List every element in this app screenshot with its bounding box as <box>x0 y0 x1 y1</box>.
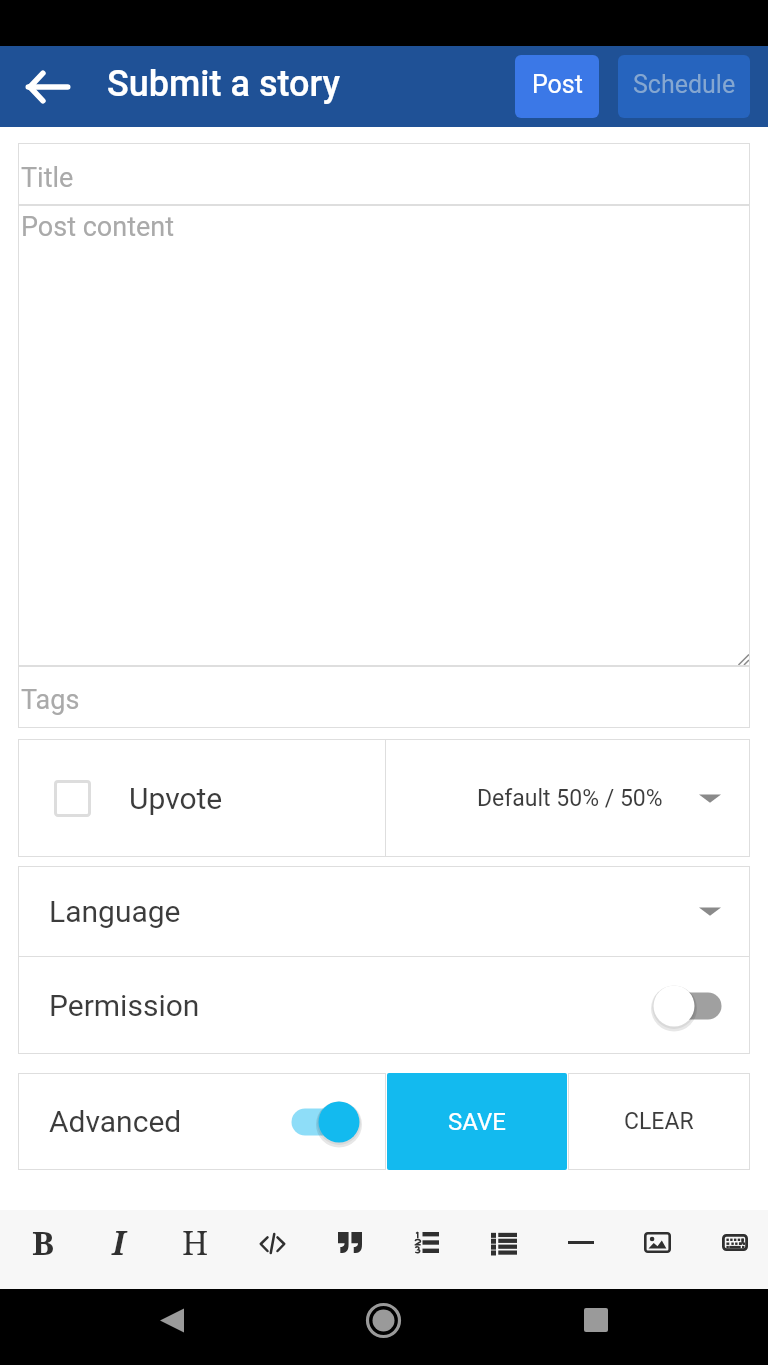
staticText: Upvote <box>129 781 223 816</box>
button[interactable]: Post <box>515 55 599 118</box>
staticText: B <box>32 1220 55 1265</box>
staticText: Schedule <box>633 70 736 99</box>
staticText: Language <box>49 894 181 929</box>
button[interactable]: Title <box>18 143 750 205</box>
staticText: H <box>182 1220 209 1265</box>
button[interactable]: Quote <box>306 1210 383 1289</box>
button[interactable]: Code <box>229 1210 306 1289</box>
staticText: Post <box>532 70 583 99</box>
button[interactable]: Permission <box>18 957 750 1054</box>
staticText: Post content <box>21 211 175 243</box>
staticText: I <box>112 1220 126 1265</box>
button[interactable]: Recents <box>542 1289 649 1365</box>
staticText: Permission <box>49 988 200 1023</box>
staticText: Submit a story <box>107 63 341 105</box>
button[interactable]: Back <box>0 46 107 127</box>
button[interactable]: SAVE <box>387 1073 567 1170</box>
button[interactable]: CLEAR <box>568 1073 750 1170</box>
button[interactable]: Upvote <box>18 739 385 857</box>
staticText: Tags <box>21 684 80 716</box>
staticText: SAVE <box>448 1108 506 1136</box>
staticText: CLEAR <box>624 1108 694 1135</box>
button[interactable]: Horizontal rule <box>537 1210 614 1289</box>
staticText: Advanced <box>49 1104 182 1139</box>
button[interactable]: Home <box>330 1289 437 1365</box>
button[interactable]: Bold <box>0 1210 76 1289</box>
button[interactable]: Numbered list <box>383 1210 460 1289</box>
button[interactable]: Advanced <box>18 1073 386 1170</box>
button[interactable]: Keyboard <box>691 1210 768 1289</box>
button[interactable]: Tags <box>18 666 750 728</box>
staticText: Title <box>21 162 74 194</box>
button[interactable]: Language <box>18 866 750 956</box>
button[interactable]: Bulleted list <box>460 1210 537 1289</box>
button[interactable]: Back <box>118 1289 225 1365</box>
button[interactable]: Italic <box>76 1210 152 1289</box>
button[interactable]: Post content <box>18 205 750 666</box>
button[interactable]: Default 50% / 50% <box>386 739 750 857</box>
button[interactable]: Heading <box>152 1210 229 1289</box>
button[interactable]: Schedule <box>618 55 750 118</box>
staticText: Default 50% / 50% <box>477 785 663 812</box>
button[interactable]: Image <box>614 1210 691 1289</box>
